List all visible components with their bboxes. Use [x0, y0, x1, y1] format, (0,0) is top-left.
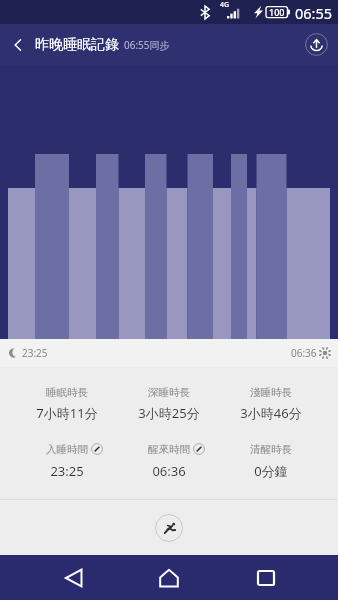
staticText: 深睡時長 [148, 386, 190, 399]
staticText: 3小時25分 [138, 404, 200, 422]
staticText: 0分鐘 [254, 462, 288, 480]
staticText: 3小時46分 [240, 404, 302, 422]
staticText: 06:36 [291, 346, 317, 360]
button[interactable]: 入睡時間 [16, 367, 118, 499]
button[interactable]: 醒來時間 [118, 367, 220, 499]
button[interactable]: Back [0, 24, 35, 65]
staticText: 睡眠時長 [46, 386, 88, 399]
button[interactable]: 深睡時長 [118, 367, 220, 499]
staticText: 入睡時間 [46, 443, 88, 456]
button[interactable]: 清醒時長 [220, 367, 322, 499]
button[interactable]: 睡眠時長 [16, 367, 118, 499]
button[interactable]: Back [49, 555, 97, 600]
staticText: 淺睡時長 [250, 386, 292, 399]
staticText: 06:55 [295, 3, 333, 23]
button[interactable]: Home [145, 555, 193, 600]
staticText: 100 [269, 6, 285, 18]
staticText: 清醒時長 [250, 443, 292, 456]
staticText: 06:55同步 [124, 38, 170, 52]
staticText: 23:25 [22, 346, 48, 360]
staticText: 23:25 [50, 462, 84, 480]
staticText: 7小時11分 [36, 404, 98, 422]
staticText: 06:36 [152, 462, 186, 480]
staticText: 4G [220, 0, 230, 10]
staticText: 昨晚睡眠記錄 [35, 36, 119, 54]
button[interactable]: Share [294, 24, 338, 65]
button[interactable]: 淺睡時長 [220, 367, 322, 499]
button[interactable]: Recent apps [242, 555, 290, 600]
staticText: 醒來時間 [148, 443, 190, 456]
button[interactable]: Start activity [155, 514, 183, 542]
